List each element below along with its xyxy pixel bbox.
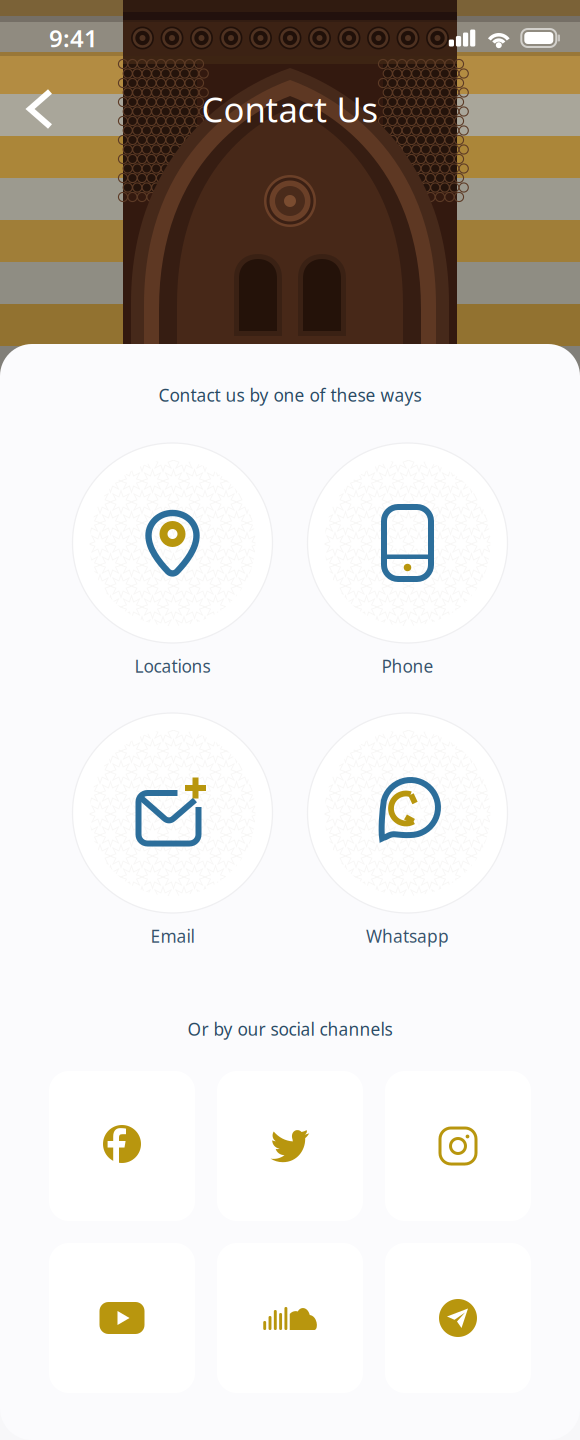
button[interactable]: Phone bbox=[307, 443, 507, 677]
button[interactable]: Facebook bbox=[49, 1071, 195, 1221]
button[interactable]: Telegram bbox=[385, 1243, 531, 1393]
button[interactable]: Twitter bbox=[217, 1071, 363, 1221]
staticText: Or by our social channels bbox=[187, 1017, 392, 1040]
staticText: Contact Us bbox=[201, 86, 378, 132]
button[interactable]: Whatsapp bbox=[307, 713, 507, 947]
button[interactable]: Locations bbox=[72, 443, 272, 677]
button[interactable]: YouTube bbox=[49, 1243, 195, 1393]
button[interactable]: Instagram bbox=[385, 1071, 531, 1221]
staticText: Contact us by one of these ways bbox=[158, 383, 421, 406]
staticText: 9:41 bbox=[49, 22, 98, 54]
staticText: Whatsapp bbox=[366, 924, 449, 947]
button[interactable]: SoundCloud bbox=[217, 1243, 363, 1393]
button[interactable]: Email bbox=[72, 713, 272, 947]
staticText: Phone bbox=[381, 654, 433, 677]
staticText: Locations bbox=[134, 654, 210, 677]
button[interactable]: Back bbox=[8, 77, 72, 141]
staticText: Email bbox=[150, 924, 194, 947]
